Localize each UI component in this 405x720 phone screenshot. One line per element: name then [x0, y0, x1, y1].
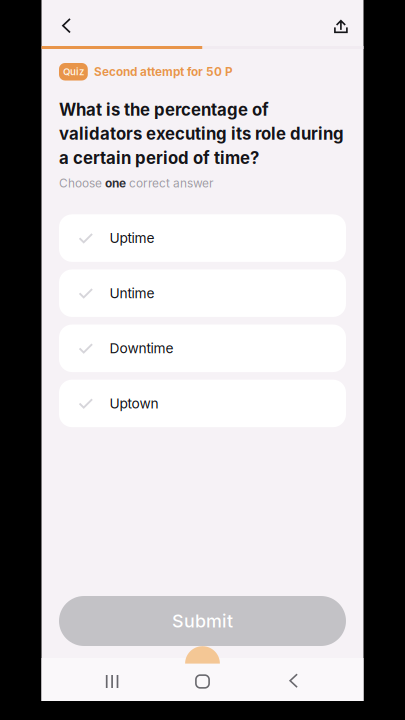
button[interactable]: Home	[157, 656, 248, 703]
staticText: Quiz	[63, 66, 84, 77]
button[interactable]: Share	[320, 0, 362, 52]
staticText: correct answer	[126, 176, 213, 190]
button[interactable]: Uptown	[59, 380, 346, 427]
staticText: Uptown	[110, 395, 159, 412]
staticText: Downtime	[110, 340, 174, 357]
staticText: Uptime	[110, 230, 155, 246]
staticText: Second attempt for 50 P	[94, 65, 233, 79]
button[interactable]: Back	[248, 656, 338, 703]
button[interactable]: Downtime	[59, 325, 346, 372]
button[interactable]: Uptime	[59, 214, 346, 262]
staticText: What is the percentage of validators exe…	[59, 99, 344, 168]
staticText: Untime	[110, 285, 155, 301]
button[interactable]: Untime	[59, 269, 346, 317]
button[interactable]: Back	[43, 0, 91, 53]
button[interactable]: Submit	[59, 596, 346, 646]
staticText: one	[105, 176, 126, 190]
button[interactable]: Recent apps	[67, 656, 157, 703]
staticText: Submit	[172, 610, 233, 632]
staticText: Choose	[59, 176, 105, 190]
